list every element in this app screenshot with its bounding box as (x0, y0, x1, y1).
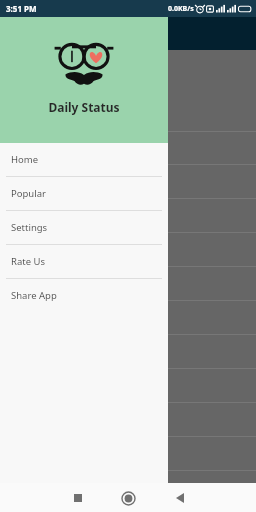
button[interactable]: Recent apps (66, 486, 90, 510)
button[interactable]: Home (116, 486, 140, 510)
staticText: Rate Us (11, 255, 45, 268)
staticText: Share App (11, 289, 57, 302)
staticText: Popular (11, 187, 46, 200)
staticText: Home (11, 153, 39, 166)
button[interactable]: Settings (0, 211, 168, 244)
button[interactable]: Share App (0, 279, 168, 312)
button[interactable]: Popular (0, 177, 168, 210)
staticText: 3:51 PM (6, 3, 37, 14)
staticText: 0.0KB/s (168, 4, 194, 14)
staticText: Settings (11, 221, 48, 234)
button[interactable]: Home (0, 143, 168, 176)
staticText: Daily Status (48, 99, 120, 115)
button[interactable]: Back (168, 486, 192, 510)
button[interactable]: Rate Us (0, 245, 168, 278)
